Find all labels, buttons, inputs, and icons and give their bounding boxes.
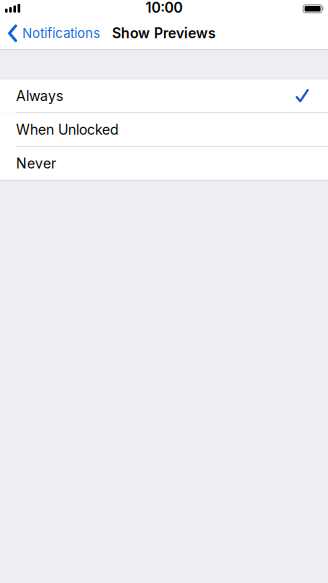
staticText: Notifications <box>22 26 100 41</box>
staticText: Never <box>16 155 56 172</box>
button[interactable]: When Unlocked <box>0 113 328 146</box>
staticText: 10:00 <box>145 0 182 16</box>
staticText: Show Previews <box>112 25 216 41</box>
staticText: When Unlocked <box>16 121 119 138</box>
button[interactable]: Always <box>0 79 328 112</box>
button[interactable]: Notifications <box>0 24 100 42</box>
staticText: Always <box>16 88 63 104</box>
button[interactable]: Never <box>0 147 328 180</box>
